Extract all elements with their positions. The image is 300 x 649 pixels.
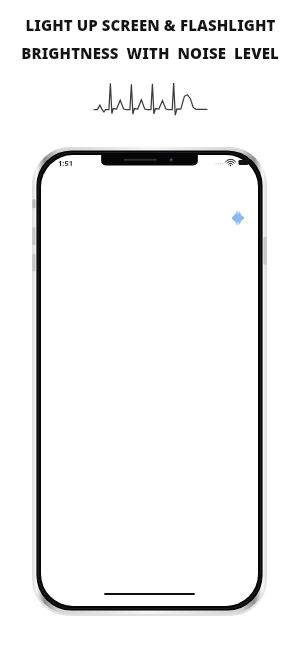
button[interactable]: Noise level <box>227 207 249 229</box>
staticText: BRIGHTNESS WITH NOISE LEVEL <box>21 43 279 63</box>
staticText: LIGHT UP SCREEN & FLASHLIGHT <box>25 15 276 35</box>
staticText: 1:51 <box>58 158 73 168</box>
